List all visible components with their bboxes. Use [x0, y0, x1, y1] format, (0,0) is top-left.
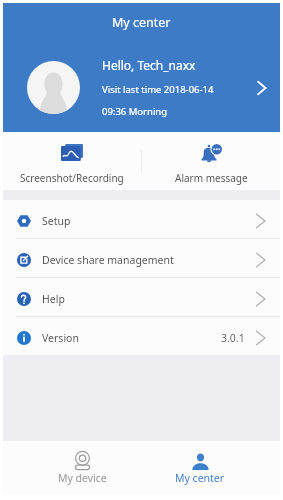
staticText: Help: [42, 292, 65, 306]
staticText: 09:36 Morning: [102, 105, 168, 118]
staticText: My center: [175, 471, 225, 485]
staticText: My center: [112, 14, 171, 31]
staticText: Alarm message: [175, 171, 248, 185]
staticText: Device share management: [42, 253, 174, 267]
staticText: My device: [58, 471, 107, 485]
button[interactable]: Alarm message: [142, 132, 280, 190]
button[interactable]: Screenshot/Recording: [3, 132, 141, 190]
staticText: 3.0.1: [221, 331, 245, 345]
button[interactable]: Device share management: [3, 239, 280, 277]
button[interactable]: My device: [24, 441, 141, 495]
button[interactable]: My center: [141, 441, 259, 495]
staticText: Setup: [42, 214, 71, 228]
staticText: Screenshot/Recording: [20, 171, 124, 185]
staticText: Version: [42, 331, 79, 345]
button[interactable]: Hello, Tech_naxx: [3, 43, 280, 132]
button[interactable]: Setup: [3, 200, 280, 238]
button[interactable]: Version: [3, 317, 280, 355]
button[interactable]: Help: [3, 278, 280, 316]
staticText: Visit last time 2018-06-14: [102, 83, 214, 96]
staticText: Hello, Tech_naxx: [102, 57, 196, 73]
